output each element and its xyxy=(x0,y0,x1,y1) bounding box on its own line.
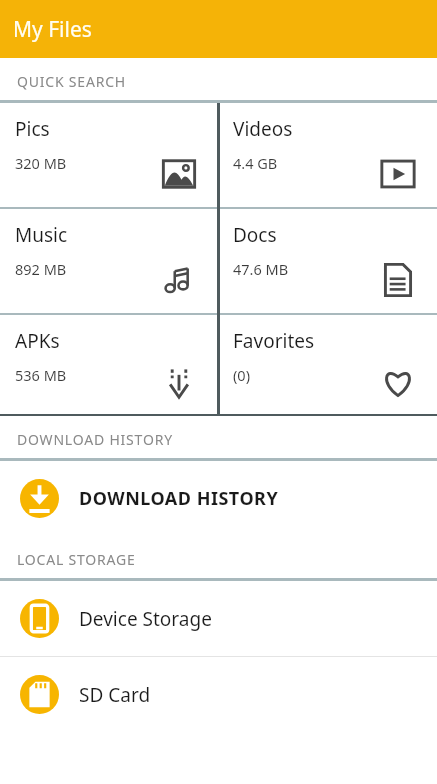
staticText: Favorites xyxy=(233,328,315,354)
staticText: SD Card xyxy=(79,682,151,708)
button[interactable]: Favorites xyxy=(218,315,437,416)
staticText: LOCAL STORAGE xyxy=(17,550,136,569)
button[interactable]: Docs xyxy=(218,209,437,313)
button[interactable]: APKs xyxy=(0,315,218,416)
staticText: 892 MB xyxy=(15,259,67,279)
staticText: Device Storage xyxy=(79,606,212,632)
button[interactable]: Device Storage xyxy=(0,581,437,656)
staticText: Docs xyxy=(233,222,277,248)
staticText: Music xyxy=(15,222,68,248)
button[interactable]: DOWNLOAD HISTORY xyxy=(0,461,437,536)
staticText: 536 MB xyxy=(15,365,67,385)
button[interactable]: Videos xyxy=(218,103,437,207)
button[interactable]: Pics xyxy=(0,103,218,207)
staticText: 47.6 MB xyxy=(233,259,289,279)
staticText: My Files xyxy=(13,15,92,44)
staticText: Videos xyxy=(233,116,293,142)
staticText: (0) xyxy=(233,365,250,385)
staticText: DOWNLOAD HISTORY xyxy=(79,486,279,511)
button[interactable]: SD Card xyxy=(0,657,437,732)
button[interactable]: Music xyxy=(0,209,218,313)
staticText: 4.4 GB xyxy=(233,153,278,173)
staticText: Pics xyxy=(15,116,50,142)
staticText: QUICK SEARCH xyxy=(17,72,127,91)
staticText: 320 MB xyxy=(15,153,67,173)
staticText: DOWNLOAD HISTORY xyxy=(17,430,173,449)
staticText: APKs xyxy=(15,328,60,354)
